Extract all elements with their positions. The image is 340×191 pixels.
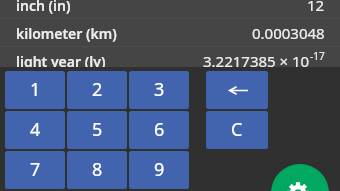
button[interactable]: kilometer (km)	[0, 19, 340, 47]
button[interactable]: 1	[5, 71, 65, 109]
button[interactable]: inch (in)	[0, 0, 340, 19]
staticText: 0.0003048	[252, 23, 325, 43]
button[interactable]: 8	[67, 151, 127, 189]
staticText: -17	[310, 49, 325, 63]
staticText: 8	[92, 157, 103, 182]
button[interactable]: 5	[67, 111, 127, 149]
button[interactable]: 2	[67, 71, 127, 109]
button[interactable]: Backspace	[206, 71, 268, 109]
staticText: inch (in)	[16, 0, 71, 15]
staticText: 4	[30, 117, 41, 142]
staticText: 7	[30, 157, 41, 182]
staticText: 3.2217385 × 10	[203, 51, 310, 67]
button[interactable]: 7	[5, 151, 65, 189]
staticText: 2	[92, 77, 103, 102]
button[interactable]: 9	[129, 151, 189, 189]
staticText: 3	[154, 77, 165, 102]
button[interactable]: Settings	[271, 164, 329, 191]
button[interactable]: light year (ly)	[0, 47, 340, 67]
button[interactable]: 4	[5, 111, 65, 149]
staticText: light year (ly)	[16, 52, 106, 67]
staticText: 5	[92, 117, 103, 142]
staticText: 1	[30, 77, 41, 102]
button[interactable]: C	[206, 111, 268, 149]
staticText: C	[231, 117, 243, 142]
staticText: kilometer (km)	[16, 24, 117, 43]
button[interactable]: 6	[129, 111, 189, 149]
staticText: 6	[154, 117, 165, 142]
staticText: 9	[154, 157, 165, 182]
button[interactable]: 3	[129, 71, 189, 109]
staticText: 12	[307, 0, 325, 15]
